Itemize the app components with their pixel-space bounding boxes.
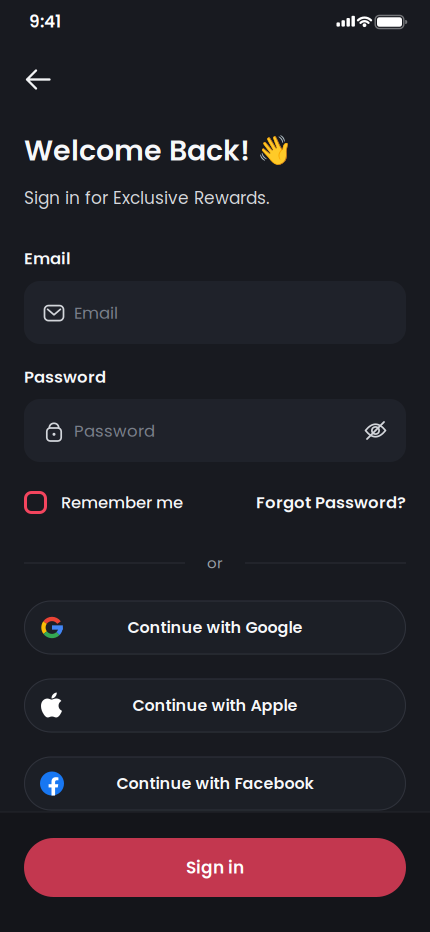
staticText: Sign in — [186, 856, 244, 879]
button[interactable]: Continue with Apple — [24, 678, 406, 732]
staticText: or — [207, 552, 223, 573]
staticText: Email — [74, 301, 118, 324]
button[interactable]: Sign in — [24, 838, 406, 897]
staticText: 9:41 — [29, 10, 61, 33]
staticText: Continue with Google — [127, 616, 302, 639]
button[interactable]: Back — [16, 57, 60, 101]
staticText: Remember me — [61, 491, 183, 514]
button[interactable]: Forgot Password? — [256, 491, 406, 514]
staticText: Welcome Back! 👋 — [24, 131, 292, 170]
staticText: Continue with Apple — [132, 694, 297, 717]
staticText: Forgot Password? — [256, 491, 406, 514]
button[interactable]: Continue with Facebook — [24, 756, 406, 810]
staticText: Password — [24, 365, 106, 388]
button[interactable]: Continue with Google — [24, 600, 406, 654]
staticText: Sign in for Exclusive Rewards. — [24, 186, 270, 210]
staticText: Password — [74, 419, 155, 442]
staticText: Continue with Facebook — [116, 772, 313, 795]
button[interactable]: Show password — [353, 408, 397, 452]
button[interactable]: Remember me — [24, 491, 183, 514]
staticText: Email — [24, 247, 71, 270]
